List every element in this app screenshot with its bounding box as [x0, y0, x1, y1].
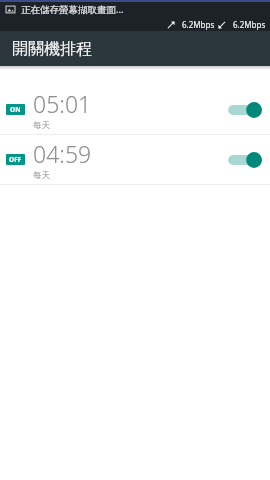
- button[interactable]: ON: [0, 85, 270, 134]
- staticText: 正在儲存螢幕擷取畫面…: [21, 3, 124, 16]
- button[interactable]: Toggle schedule: [226, 149, 262, 171]
- staticText: 04:59: [33, 138, 92, 169]
- staticText: ON: [10, 105, 21, 114]
- staticText: 每天: [33, 170, 50, 181]
- staticText: OFF: [9, 155, 22, 164]
- staticText: 05:01: [33, 88, 92, 119]
- staticText: 每天: [33, 120, 50, 131]
- staticText: 6.2Mbps: [233, 19, 266, 30]
- staticText: 開關機排程: [12, 39, 92, 59]
- button[interactable]: Toggle schedule: [226, 99, 262, 121]
- button[interactable]: OFF: [0, 135, 270, 184]
- staticText: 6.2Mbps: [182, 19, 215, 30]
